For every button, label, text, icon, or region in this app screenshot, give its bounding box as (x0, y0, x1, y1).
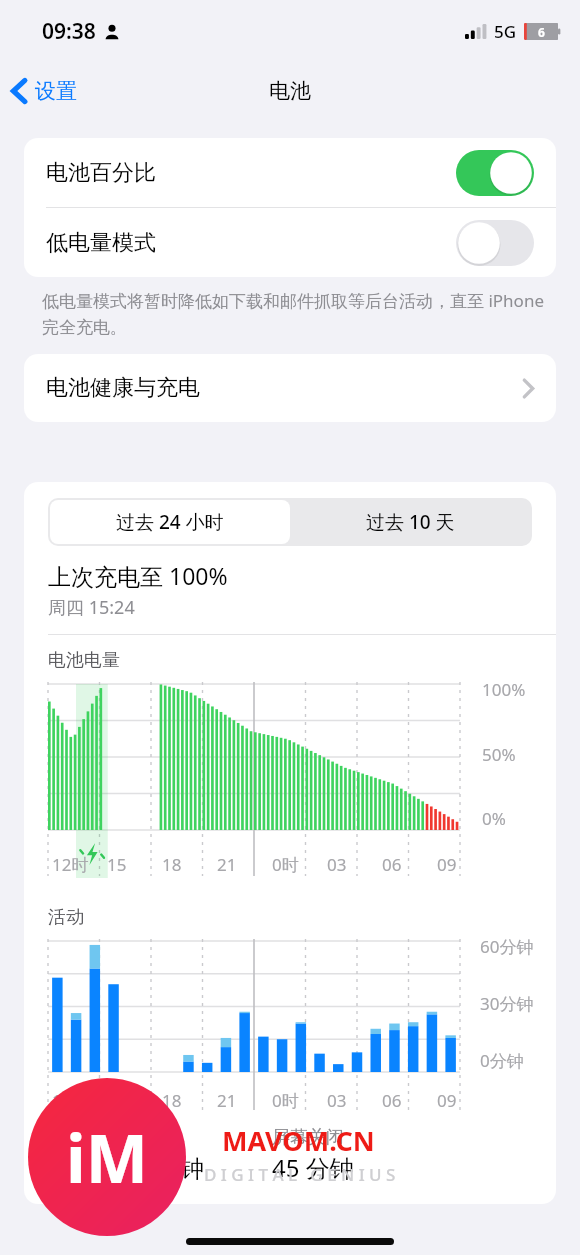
staticText: 06 (382, 1089, 402, 1112)
staticText: 电池 (269, 78, 311, 104)
staticText: 0分钟 (480, 1049, 524, 1072)
staticText: 电池百分比 (46, 159, 156, 187)
button[interactable]: 电池健康与充电 (24, 354, 556, 422)
staticText: 上次充电至 100% (48, 560, 228, 591)
staticText: 低电量模式 (46, 229, 156, 257)
staticText: 低电量模式将暂时降低如下载和邮件抓取等后台活动，直至 iPhone 完全充电。 (42, 289, 546, 338)
staticText: 设置 (35, 78, 77, 104)
staticText: 屏幕关闭 (272, 1126, 344, 1149)
staticText: 100% (482, 678, 526, 701)
staticText: 09:38 (42, 17, 96, 46)
staticText: 6 (538, 24, 545, 40)
staticText: 21 (217, 1089, 237, 1112)
staticText: 0时 (272, 853, 299, 876)
staticText: 周四 15:24 (48, 595, 135, 620)
staticText: D I G I T A L G E N I U S (204, 1163, 396, 1186)
staticText: 45 分钟 (272, 1151, 354, 1184)
staticText: 过去 10 天 (366, 509, 455, 535)
staticText: 30分钟 (480, 992, 534, 1015)
staticText: 18 (162, 853, 182, 876)
staticText: 屏幕开启 (48, 1126, 120, 1149)
staticText: 50% (482, 743, 516, 766)
button[interactable]: 低电量模式 (24, 208, 556, 277)
button[interactable]: 过去 24 小时 (50, 500, 290, 544)
staticText: 12时 (52, 853, 89, 876)
staticText: 12时 (52, 1089, 89, 1112)
staticText: 06 (382, 853, 402, 876)
staticText: 15 (107, 853, 127, 876)
staticText: 18 (162, 1089, 182, 1112)
staticText: 0% (482, 807, 506, 830)
button[interactable]: Back to 设置 (0, 72, 89, 110)
button[interactable]: 过去 10 天 (290, 500, 530, 544)
button[interactable]: 电池百分比 (24, 138, 556, 207)
staticText: 09 (437, 853, 457, 876)
staticText: 电池电量 (48, 649, 120, 672)
staticText: 09 (437, 1089, 457, 1112)
staticText: 电池健康与充电 (46, 374, 200, 402)
staticText: 60分钟 (480, 935, 534, 958)
staticText: 03 (327, 853, 347, 876)
staticText: 21 (217, 853, 237, 876)
staticText: MAVOM.CN (222, 1122, 375, 1159)
staticText: 03 (327, 1089, 347, 1112)
staticText: 6 小时 38 分钟 (48, 1151, 204, 1184)
staticText: 活动 (48, 906, 84, 929)
staticText: 过去 24 小时 (116, 509, 224, 535)
staticText: 5G (494, 20, 517, 43)
staticText: iM (66, 1112, 148, 1202)
staticText: 0时 (272, 1089, 299, 1112)
